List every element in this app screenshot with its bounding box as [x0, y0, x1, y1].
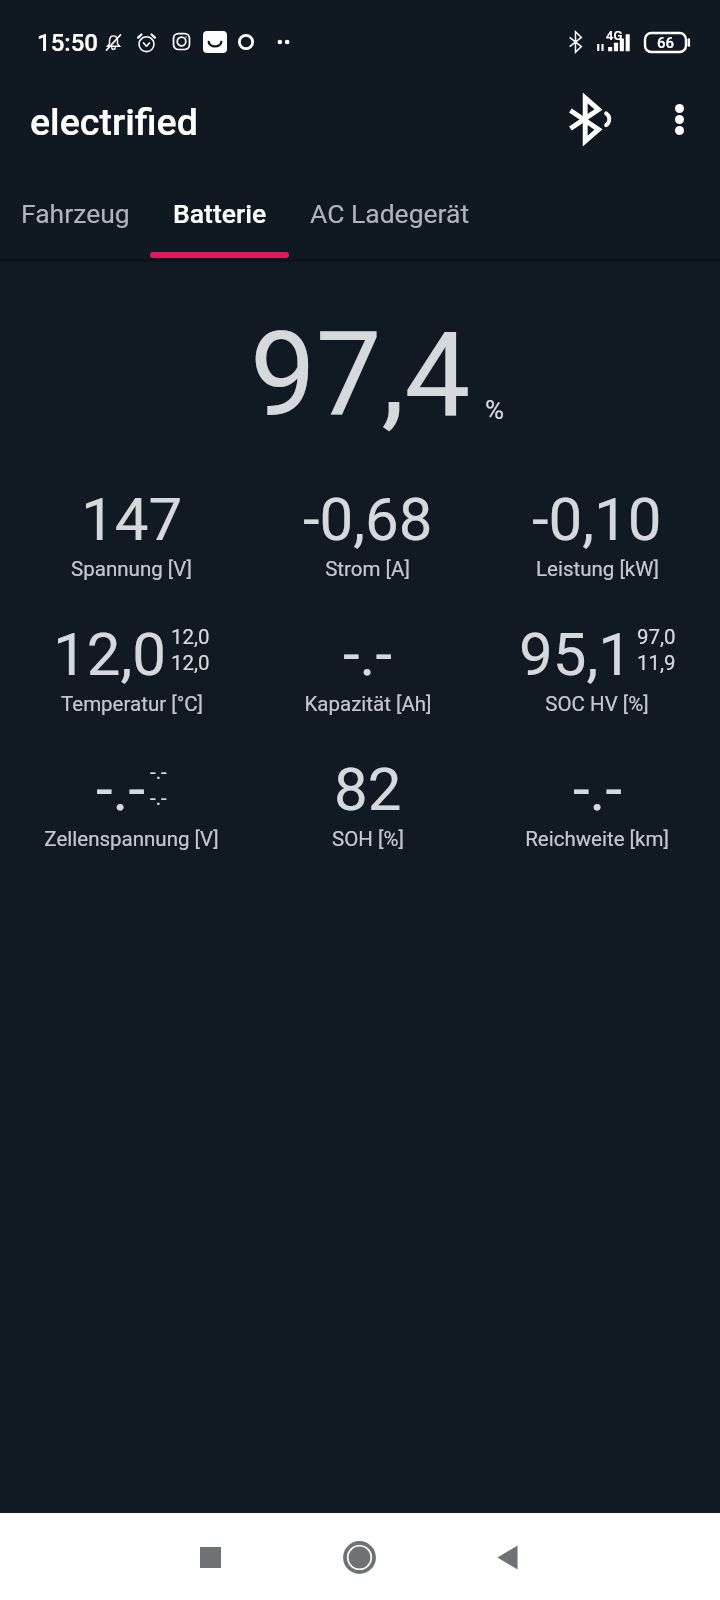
- staticText: -0,68: [303, 484, 433, 554]
- staticText: 4G: [606, 28, 623, 43]
- staticText: 147: [81, 484, 183, 554]
- button[interactable]: Batterie: [150, 176, 289, 260]
- staticText: -.-: [343, 619, 392, 689]
- staticText: 82: [334, 754, 402, 824]
- button[interactable]: Home: [311, 1514, 408, 1600]
- staticText: -.-: [573, 754, 622, 824]
- staticText: 12,0: [53, 619, 166, 689]
- staticText: 95,1: [519, 619, 632, 689]
- staticText: %: [485, 395, 505, 425]
- staticText: Fahrzeug: [21, 198, 130, 229]
- staticText: Spannung [V]: [71, 557, 192, 581]
- button[interactable]: 95,1: [482, 619, 720, 716]
- button[interactable]: -.-: [249, 619, 482, 716]
- staticText: 15:50: [37, 29, 98, 57]
- button[interactable]: 82: [249, 754, 482, 851]
- staticText: electrified: [30, 100, 198, 144]
- button[interactable]: 147: [0, 484, 249, 581]
- staticText: 97,4: [250, 306, 471, 443]
- staticText: Temperatur [°C]: [61, 692, 203, 716]
- staticText: -.- -.-: [150, 760, 167, 810]
- button[interactable]: -.-: [482, 754, 720, 851]
- staticText: 66: [657, 34, 675, 52]
- staticText: Zellenspannung [V]: [44, 827, 219, 851]
- button[interactable]: -0,68: [249, 484, 482, 581]
- staticText: Leistung [kW]: [536, 557, 659, 581]
- staticText: 97,0 11,9: [637, 625, 676, 675]
- button[interactable]: -.-: [0, 754, 249, 851]
- staticText: Reichweite [km]: [525, 827, 669, 851]
- staticText: Kapazität [Ah]: [304, 692, 432, 716]
- staticText: SOH [%]: [332, 827, 404, 851]
- staticText: 12,0 12,0: [171, 625, 210, 675]
- button[interactable]: Fahrzeug: [1, 176, 150, 260]
- staticText: Batterie: [173, 198, 267, 229]
- staticText: AC Ladegerät: [310, 198, 470, 229]
- button[interactable]: More options: [637, 84, 720, 176]
- button[interactable]: -0,10: [482, 484, 720, 581]
- button[interactable]: Back: [459, 1514, 556, 1600]
- staticText: Strom [A]: [325, 557, 410, 581]
- staticText: -.-: [96, 754, 145, 824]
- button[interactable]: Bluetooth: [542, 84, 634, 176]
- staticText: SOC HV [%]: [545, 692, 649, 716]
- staticText: -0,10: [532, 484, 662, 554]
- button[interactable]: 12,0: [0, 619, 249, 716]
- button[interactable]: AC Ladegerät: [289, 176, 491, 260]
- button[interactable]: Recent apps: [162, 1514, 259, 1600]
